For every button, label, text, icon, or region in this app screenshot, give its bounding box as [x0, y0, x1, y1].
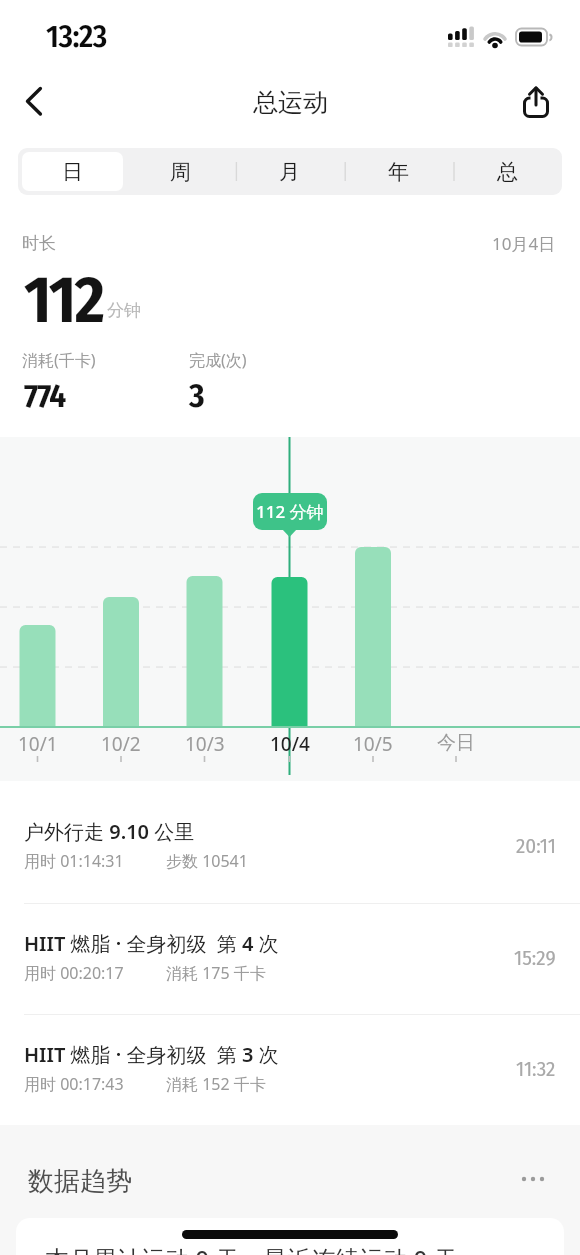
staticText: 10月4日	[492, 232, 556, 255]
staticText: 步数 10541	[166, 850, 248, 872]
button[interactable]: 日	[18, 148, 126, 195]
staticText: 用时 00:20:17	[24, 962, 124, 984]
staticText: 完成(次)	[189, 349, 247, 371]
staticText: HIIT 燃脂 · 全身初级 第 4 次	[24, 930, 279, 957]
staticText: 10/1	[18, 731, 58, 757]
button[interactable]: HIIT 燃脂 · 全身初级 第 3 次	[0, 1004, 580, 1115]
staticText: 分钟	[107, 300, 141, 321]
button[interactable]: 总	[453, 148, 562, 195]
button[interactable]: 年	[344, 148, 453, 195]
staticText: 时长	[22, 233, 56, 254]
staticText: 户外行走 9.10 公里	[24, 818, 195, 845]
staticText: 总运动	[253, 87, 328, 118]
staticText: 用时 01:14:31	[24, 850, 124, 872]
staticText: 周	[170, 159, 191, 185]
staticText: 10/3	[185, 731, 225, 757]
staticText: 20:11	[516, 833, 556, 858]
button[interactable]: HIIT 燃脂 · 全身初级 第 4 次	[0, 893, 580, 1004]
button[interactable]	[512, 78, 560, 126]
staticText: 774	[24, 376, 66, 416]
button[interactable]: 周	[126, 148, 235, 195]
staticText: 用时 00:17:43	[24, 1073, 124, 1095]
button[interactable]: 户外行走 9.10 公里	[0, 781, 580, 892]
staticText: 本月累计运动 0 天，最近连续运动 0 天	[45, 1242, 458, 1255]
button[interactable]	[10, 78, 58, 126]
button[interactable]: 月	[235, 148, 344, 195]
staticText: 10/4	[270, 731, 310, 757]
staticText: 日	[62, 159, 83, 185]
staticText: 月	[279, 159, 300, 185]
staticText: 数据趋势	[28, 1165, 132, 1198]
staticText: 13:23	[46, 18, 107, 55]
staticText: 11:32	[516, 1056, 556, 1081]
staticText: 消耗(千卡)	[22, 349, 96, 371]
staticText: 消耗 175 千卡	[166, 962, 266, 984]
staticText: 今日	[437, 731, 475, 755]
staticText: 112	[24, 261, 104, 339]
staticText: HIIT 燃脂 · 全身初级 第 3 次	[24, 1041, 279, 1068]
staticText: 总	[497, 159, 518, 185]
button[interactable]	[512, 1164, 556, 1194]
staticText: 消耗 152 千卡	[166, 1073, 266, 1095]
staticText: 3	[189, 376, 205, 416]
staticText: 年	[388, 159, 409, 185]
staticText: 112 分钟	[256, 500, 324, 523]
staticText: 10/5	[353, 731, 393, 757]
staticText: 15:29	[514, 945, 556, 970]
staticText: 10/2	[101, 731, 141, 757]
